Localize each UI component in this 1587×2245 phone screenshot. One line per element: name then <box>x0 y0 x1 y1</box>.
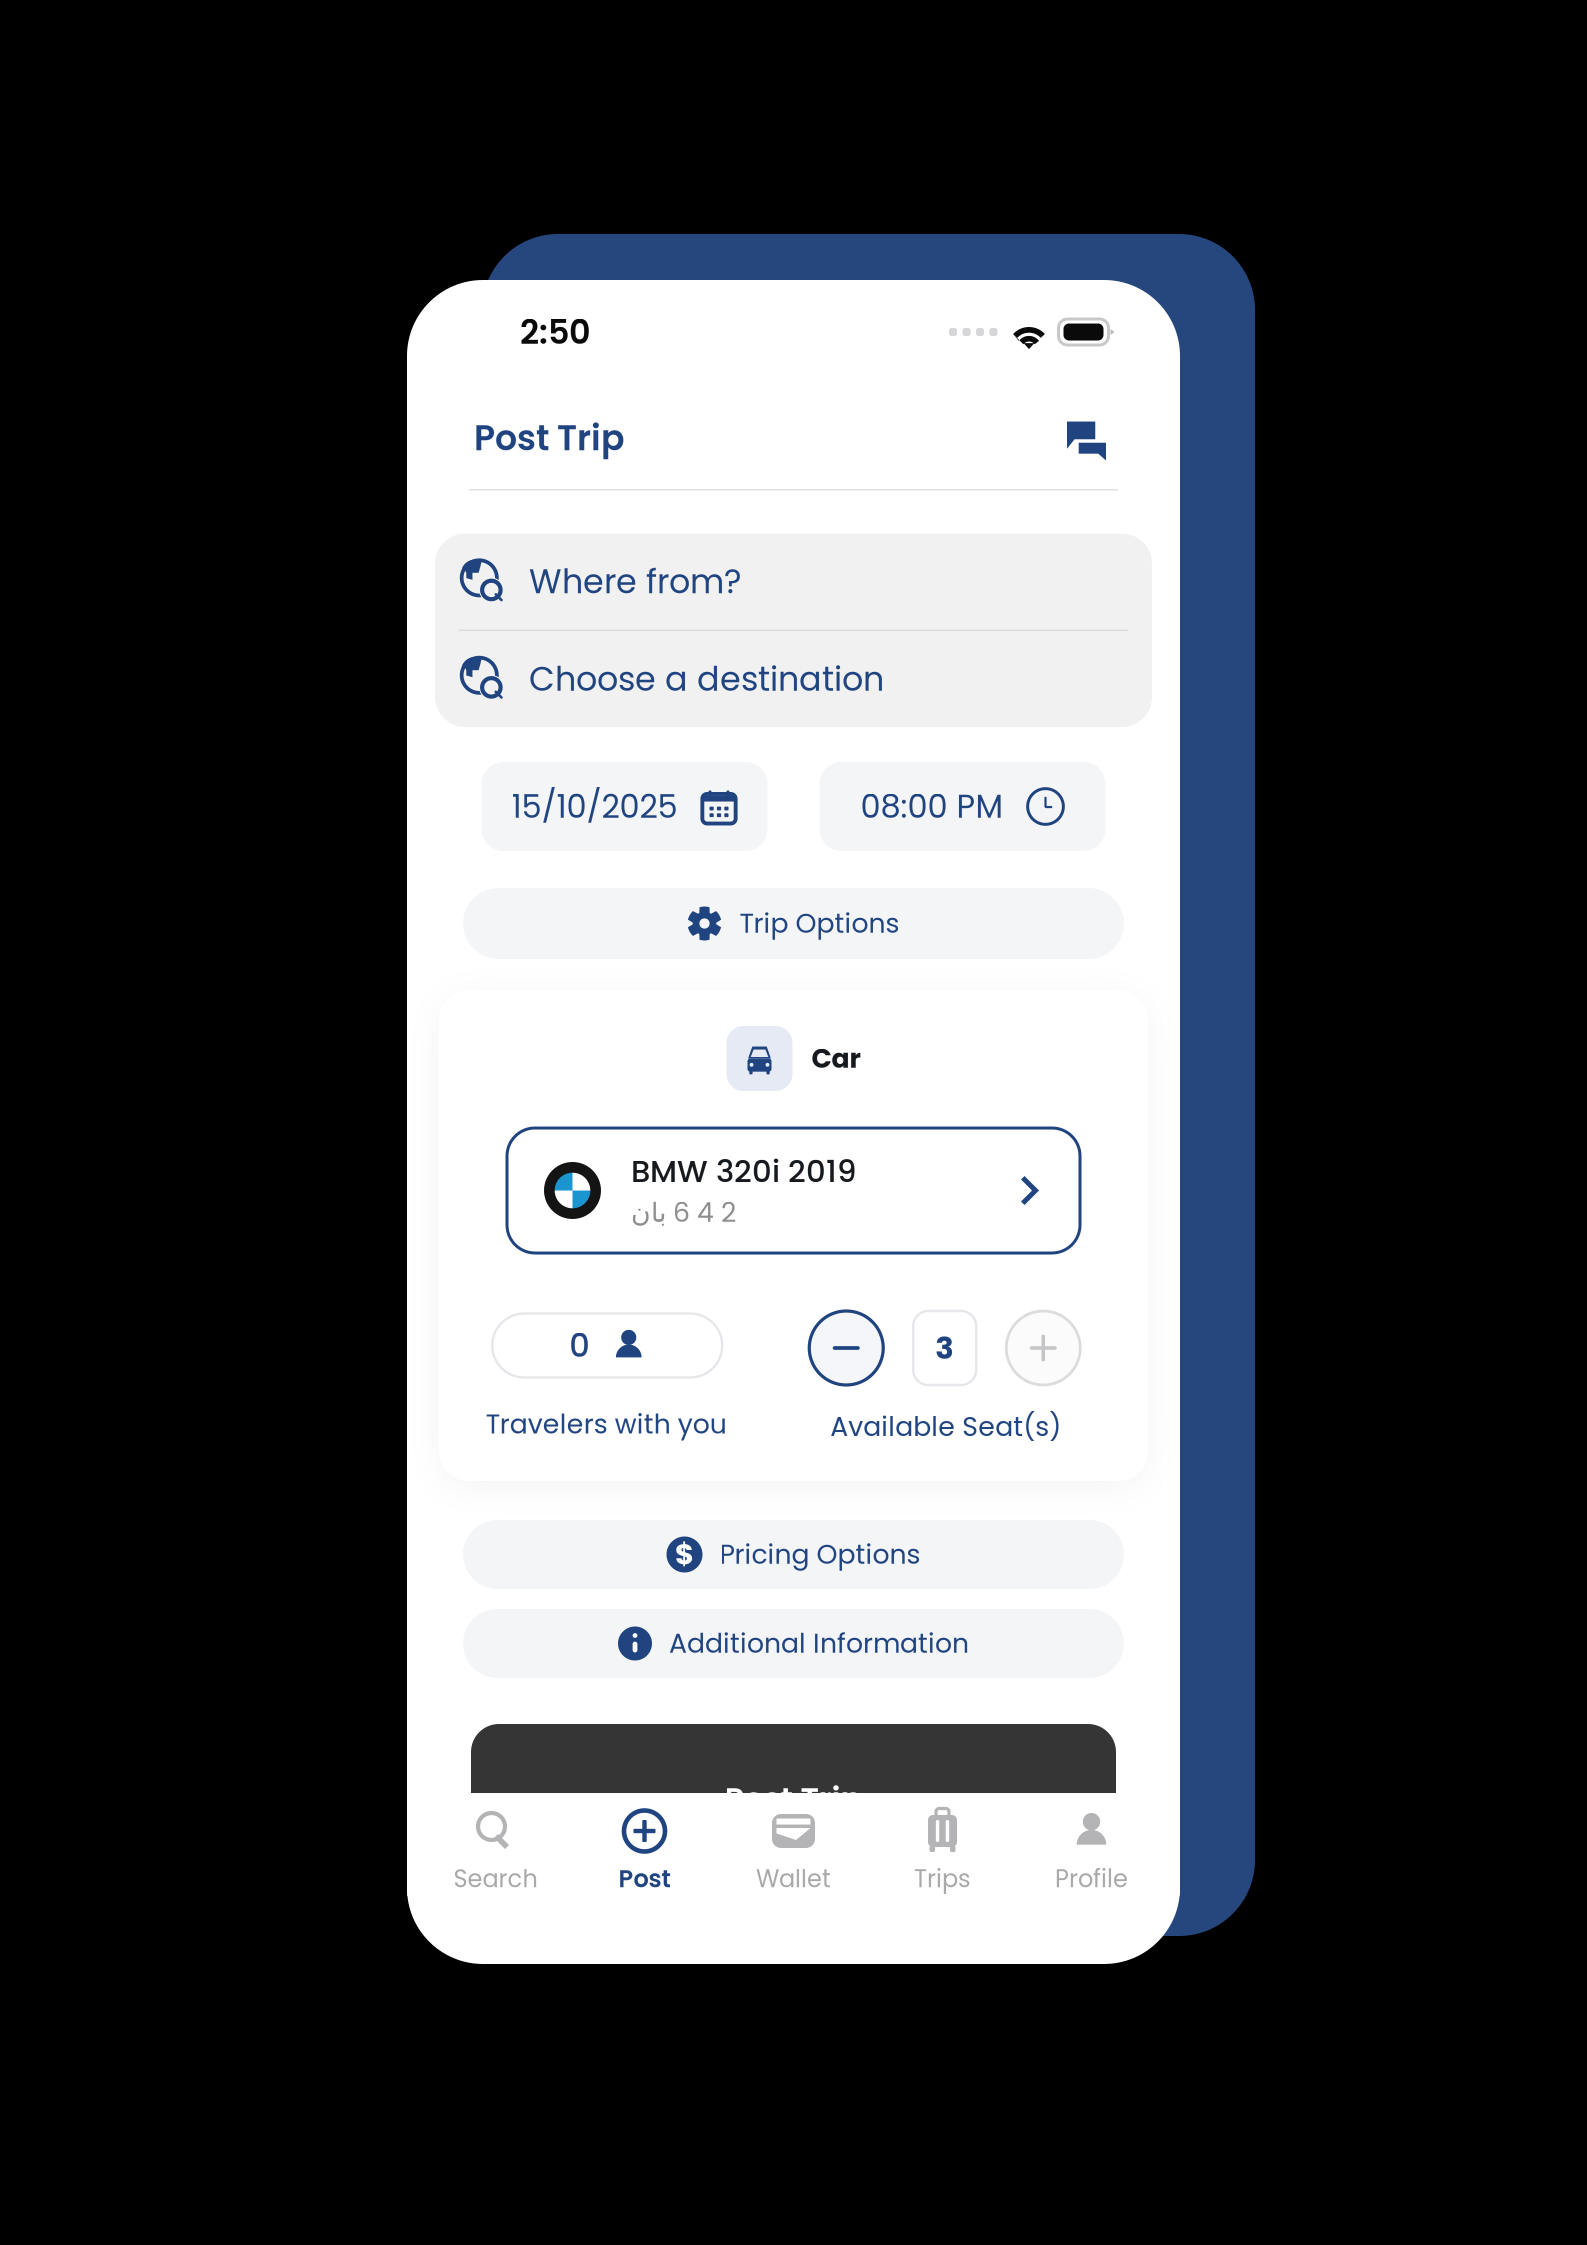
button[interactable]: Post Trip <box>407 1724 1180 1874</box>
staticText: Post Trip <box>724 1777 862 1821</box>
staticText: Post Trip <box>474 414 625 462</box>
staticText: 08:00 PM <box>860 784 1003 829</box>
button[interactable]: Post <box>570 1793 719 1896</box>
staticText: Search <box>453 1862 537 1896</box>
button[interactable]: 0 <box>492 1313 722 1377</box>
staticText: Trips <box>914 1862 971 1896</box>
button[interactable]: BMW 320i 2019 <box>439 1128 1148 1253</box>
button[interactable]: Trip Options <box>463 888 1124 959</box>
staticText: BMW 320i 2019 <box>631 1150 856 1193</box>
button[interactable]: $ <box>463 1520 1124 1589</box>
button[interactable]: Where from? <box>435 534 1152 630</box>
button[interactable]: Search <box>421 1793 570 1896</box>
button[interactable]: Decrease available seats <box>809 1311 883 1385</box>
button[interactable]: Additional Information <box>463 1609 1124 1678</box>
button[interactable]: Increase available seats <box>1006 1311 1080 1385</box>
button[interactable]: Trips <box>868 1793 1017 1896</box>
button[interactable]: Choose a destination <box>435 631 1152 727</box>
staticText: Additional Information <box>669 1625 969 1662</box>
staticText: Choose a destination <box>529 656 884 702</box>
staticText: Pricing Options <box>719 1536 920 1573</box>
staticText: Car <box>811 1040 860 1077</box>
staticText: Travelers with you <box>486 1405 727 1443</box>
staticText: 3 <box>935 1326 954 1369</box>
button[interactable]: Wallet <box>719 1793 868 1896</box>
staticText: Available Seat(s) <box>830 1408 1061 1445</box>
staticText: Post <box>618 1862 670 1896</box>
staticText: $ <box>675 1534 694 1574</box>
staticText: Where from? <box>529 558 741 605</box>
staticText: 2:50 <box>520 309 591 355</box>
staticText: Profile <box>1055 1862 1128 1896</box>
button[interactable]: Profile <box>1017 1793 1166 1896</box>
button[interactable]: 08:00 PM <box>819 762 1105 851</box>
staticText: Trip Options <box>739 905 899 942</box>
button[interactable]: 15/10/2025 <box>481 762 767 851</box>
staticText: Wallet <box>756 1862 831 1896</box>
staticText: 15/10/2025 <box>511 784 677 829</box>
staticText: ‪بان‬ 6 4 2 <box>631 1194 736 1231</box>
staticText: 0 <box>569 1323 590 1368</box>
button[interactable]: Post Trip <box>407 395 1180 481</box>
